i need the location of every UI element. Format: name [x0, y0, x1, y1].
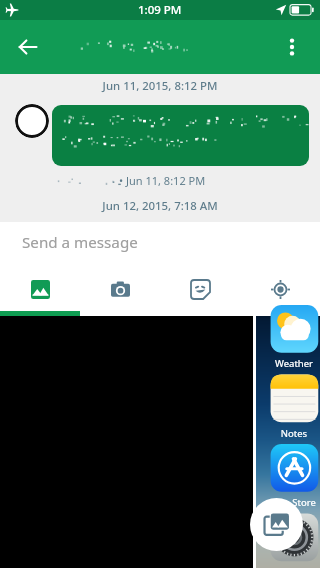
staticText: Notes — [262, 427, 320, 440]
staticText: 1:09 PM — [138, 2, 182, 18]
button[interactable]: Photo — [0, 316, 253, 568]
button[interactable]: Back — [12, 31, 44, 63]
button[interactable]: Stickers — [160, 268, 240, 311]
button[interactable]: More options — [278, 33, 306, 61]
button[interactable]: Contact avatar — [15, 104, 49, 138]
button[interactable]: Open photo library — [250, 498, 303, 551]
button[interactable]: Location — [240, 268, 320, 311]
button[interactable]: Send a message — [0, 222, 320, 268]
staticText: Send a message — [22, 232, 138, 253]
button[interactable]: Camera — [80, 268, 160, 311]
staticText: Weather — [262, 357, 320, 370]
staticText: Jun 11, 2015, 8:12 PM — [0, 78, 320, 94]
staticText: Jun 12, 2015, 7:18 AM — [0, 198, 320, 214]
button[interactable]: Photos — [0, 268, 80, 311]
staticText: App Store — [262, 496, 320, 509]
staticText: • Jun 11, 8:12 PM — [119, 173, 206, 188]
button[interactable]: Screenshot — [256, 316, 320, 568]
button[interactable] — [52, 105, 309, 166]
